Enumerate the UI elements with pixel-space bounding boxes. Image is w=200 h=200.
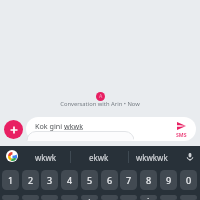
button[interactable]: y: [101, 195, 118, 200]
button[interactable]: Voice input: [180, 146, 200, 168]
button[interactable]: 5: [81, 170, 98, 190]
button[interactable]: e: [41, 195, 58, 200]
staticText: SMS: [176, 131, 187, 138]
button[interactable]: u: [120, 195, 137, 200]
staticText: Conversation with Arin • Now: [60, 100, 140, 108]
button[interactable]: t: [81, 195, 98, 200]
button[interactable]: i: [140, 195, 157, 200]
staticText: 7: [126, 174, 132, 186]
button[interactable]: 6: [101, 170, 118, 190]
button[interactable]: 8: [140, 170, 157, 190]
staticText: 8: [146, 174, 152, 186]
button[interactable]: o: [160, 195, 177, 200]
staticText: 5: [87, 174, 93, 186]
button[interactable]: 9: [160, 170, 177, 190]
staticText: 1: [8, 174, 14, 186]
staticText: 3: [47, 174, 53, 186]
button[interactable]: 3: [41, 170, 58, 190]
staticText: 2: [28, 174, 34, 186]
button[interactable]: Add attachment: [4, 120, 23, 139]
button[interactable]: 2: [22, 170, 39, 190]
button[interactable]: 0: [180, 170, 197, 190]
button[interactable]: wkwk: [22, 146, 70, 168]
staticText: 6: [107, 174, 113, 186]
staticText: wkwk: [64, 121, 83, 131]
button[interactable]: w: [22, 195, 39, 200]
button[interactable]: p: [180, 195, 197, 200]
staticText: 0: [186, 174, 192, 186]
staticText: ekwk: [89, 152, 109, 163]
staticText: Kok gini: [35, 121, 64, 131]
button[interactable]: Send SMS: [172, 117, 190, 140]
staticText: 9: [166, 174, 172, 186]
staticText: wkwkwk: [136, 152, 168, 163]
button[interactable]: r: [61, 195, 78, 200]
button[interactable]: wkwkwk: [130, 146, 174, 168]
staticText: 4: [67, 174, 73, 186]
staticText: i: [147, 195, 150, 200]
button[interactable]: 7: [120, 170, 137, 190]
button[interactable]: 4: [61, 170, 78, 190]
staticText: t: [88, 195, 92, 200]
button[interactable]: q: [2, 195, 19, 200]
button[interactable]: 1: [2, 170, 19, 190]
button[interactable]: Google Assistant: [6, 150, 18, 162]
button[interactable]: ekwk: [71, 146, 127, 168]
staticText: wkwk: [35, 152, 57, 163]
staticText: A: [99, 93, 103, 100]
